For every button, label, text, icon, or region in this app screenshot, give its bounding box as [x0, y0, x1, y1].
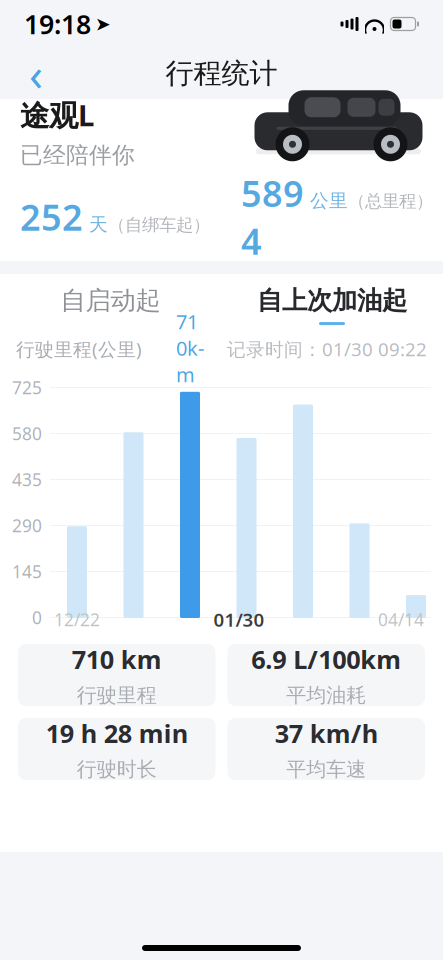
staticText: 290 [12, 514, 42, 537]
staticText: ➤ [95, 13, 111, 35]
staticText: 19:18 [24, 6, 91, 42]
staticText: 途观L [20, 95, 94, 134]
staticText: 平均油耗 [286, 683, 366, 708]
staticText: 12/22 [54, 608, 100, 631]
staticText: 已经陪伴你 [20, 141, 135, 169]
staticText: 6.9 L/100km [251, 642, 401, 676]
staticText: 行驶里程(公里) [16, 337, 142, 361]
staticText: 19 h 28 min [46, 716, 188, 750]
staticText: 580 [12, 422, 42, 445]
staticText: （总里程） [348, 190, 433, 212]
staticText: 01/30 [213, 607, 264, 632]
staticText: 0 [32, 606, 42, 629]
staticText: （自绑车起） [108, 214, 210, 236]
staticText: 自上次加油起 [257, 285, 407, 316]
staticText: 37 km/h [275, 716, 378, 750]
staticText: 公里 [304, 189, 348, 212]
staticText: 记录时间：01/30 09:22 [227, 337, 427, 361]
staticText: 行程统计 [165, 56, 277, 91]
staticText: 710km [176, 308, 204, 388]
staticText: 平均车速 [286, 757, 366, 782]
staticText: 710 km [72, 642, 162, 676]
staticText: 天 [83, 213, 108, 236]
staticText: ‹ [29, 43, 43, 104]
button[interactable]: Back [12, 48, 60, 99]
staticText: 5894 [241, 169, 304, 265]
staticText: 145 [12, 560, 42, 583]
staticText: 252 [20, 193, 83, 241]
staticText: 行驶时长 [77, 757, 157, 782]
staticText: 自启动起 [60, 285, 160, 316]
staticText: 725 [12, 376, 42, 399]
button[interactable]: 自启动起 [0, 274, 221, 336]
button[interactable]: 自上次加油起 [221, 274, 443, 336]
staticText: 435 [12, 468, 42, 491]
staticText: 04/14 [378, 608, 424, 631]
staticText: 行驶里程 [77, 683, 157, 708]
